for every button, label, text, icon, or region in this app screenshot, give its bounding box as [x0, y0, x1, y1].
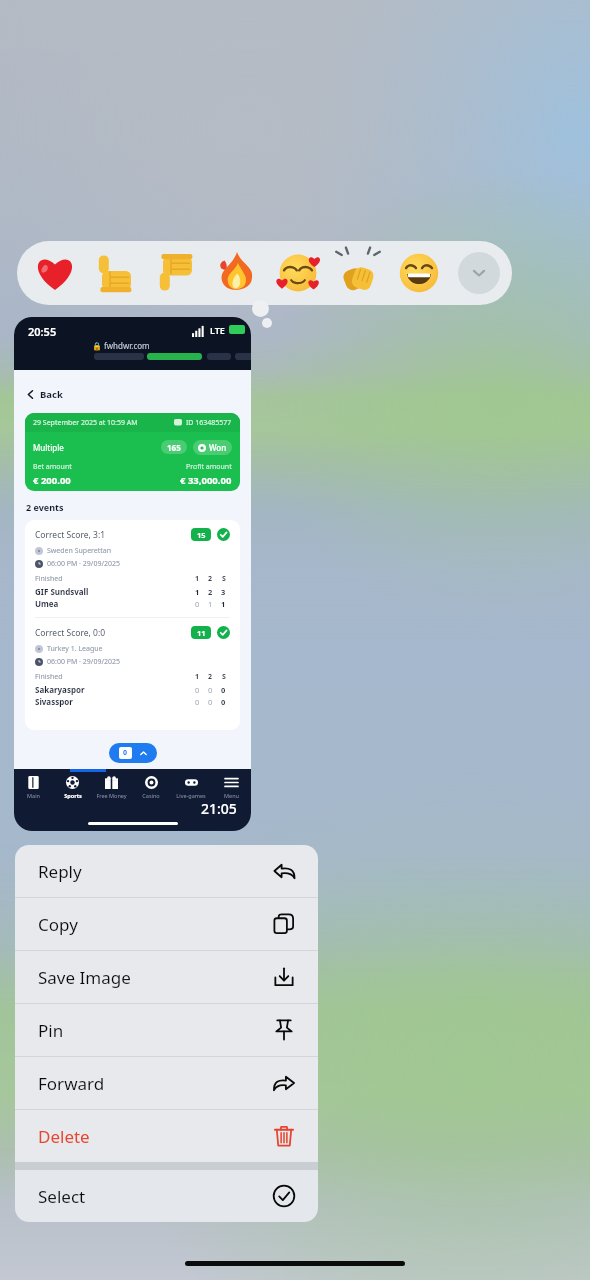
- staticText: 21:05: [201, 799, 237, 818]
- staticText: Live-games: [176, 792, 206, 799]
- staticText: 2 events: [26, 501, 64, 513]
- button[interactable]: Live-games: [171, 769, 211, 807]
- button[interactable]: Free Money: [92, 769, 131, 807]
- staticText: Finished: [35, 672, 63, 682]
- staticText: 🔒 fwhdwr.com: [92, 340, 150, 351]
- staticText: Won: [209, 442, 227, 453]
- button[interactable]: Save Image: [15, 951, 318, 1003]
- button[interactable]: Select: [15, 1170, 318, 1222]
- staticText: 165: [167, 442, 181, 453]
- staticText: 1: [208, 599, 213, 609]
- button[interactable]: Sports: [53, 769, 92, 807]
- staticText: 1: [195, 587, 200, 597]
- staticText: Correct Score, 0:0: [35, 627, 106, 639]
- button[interactable]: Delete: [15, 1110, 318, 1162]
- button[interactable]: Reaction 1: [33, 251, 77, 295]
- button[interactable]: Reaction 2: [94, 251, 138, 295]
- staticText: 0: [208, 685, 213, 695]
- staticText: € 33,000.00: [180, 474, 232, 487]
- button[interactable]: Reaction 6: [336, 251, 380, 295]
- staticText: Finished: [35, 574, 63, 584]
- staticText: S: [222, 574, 226, 584]
- button[interactable]: More reactions: [458, 252, 500, 294]
- button[interactable]: Casino: [131, 769, 171, 807]
- staticText: 29 September 2025 at 10:59 AM: [33, 418, 138, 428]
- staticText: 2: [208, 574, 213, 584]
- staticText: 0: [195, 599, 200, 609]
- staticText: 2: [208, 672, 213, 682]
- staticText: Multiple: [33, 442, 64, 453]
- staticText: 1: [221, 599, 226, 609]
- button[interactable]: Forward: [15, 1057, 318, 1109]
- button[interactable]: Pin: [15, 1004, 318, 1056]
- staticText: Casino: [142, 792, 160, 799]
- staticText: Copy: [38, 913, 78, 936]
- staticText: 0: [221, 697, 226, 707]
- staticText: 3: [221, 587, 226, 597]
- button[interactable]: Correct Score, 0:0: [35, 626, 230, 707]
- button[interactable]: 29 September 2025 at 10:59 AM: [25, 413, 240, 491]
- staticText: 0: [195, 697, 200, 707]
- staticText: 06:00 PM · 29/09/2025: [47, 559, 121, 569]
- staticText: 20:55: [28, 324, 57, 339]
- staticText: GIF Sundsvall: [35, 586, 89, 597]
- staticText: Delete: [38, 1125, 90, 1148]
- staticText: Pin: [38, 1019, 64, 1042]
- button[interactable]: Reaction 7: [397, 251, 441, 295]
- button[interactable]: Reaction 3: [155, 251, 199, 295]
- staticText: S: [222, 672, 226, 682]
- button[interactable]: Reaction 5: [276, 251, 320, 295]
- staticText: Sports: [64, 792, 82, 799]
- button[interactable]: 0: [109, 743, 157, 763]
- staticText: Back: [40, 388, 63, 401]
- button[interactable]: Reaction 4: [215, 251, 259, 295]
- staticText: Sivasspor: [35, 696, 73, 707]
- staticText: LTE: [210, 324, 225, 336]
- staticText: Umea: [35, 598, 59, 609]
- staticText: 0: [123, 748, 128, 758]
- staticText: Correct Score, 3:1: [35, 529, 106, 541]
- staticText: 2: [208, 587, 213, 597]
- staticText: 0: [221, 685, 226, 695]
- staticText: 11: [197, 628, 206, 638]
- staticText: Forward: [38, 1072, 105, 1095]
- staticText: Turkey 1. League: [47, 644, 103, 654]
- staticText: Save Image: [38, 966, 131, 989]
- staticText: Bet amount: [33, 462, 72, 472]
- staticText: Select: [38, 1185, 86, 1208]
- staticText: 1: [195, 672, 200, 682]
- staticText: Profit amount: [186, 462, 232, 472]
- button[interactable]: Main: [14, 769, 53, 807]
- staticText: 15: [197, 530, 206, 540]
- staticText: 1: [195, 574, 200, 584]
- staticText: 0: [208, 697, 213, 707]
- staticText: Sakaryaspor: [35, 684, 85, 695]
- staticText: 06:00 PM · 29/09/2025: [47, 657, 121, 667]
- button[interactable]: Menu: [211, 769, 251, 807]
- staticText: ID 163485577: [186, 418, 232, 428]
- button[interactable]: 20:55: [14, 317, 251, 831]
- staticText: Reply: [38, 860, 82, 883]
- button[interactable]: Reply: [15, 845, 318, 897]
- staticText: Free Money: [96, 792, 127, 799]
- staticText: 0: [195, 685, 200, 695]
- button[interactable]: Correct Score, 3:1: [35, 528, 230, 609]
- button[interactable]: Copy: [15, 898, 318, 950]
- button[interactable]: Back: [26, 383, 63, 405]
- staticText: Sweden Superettan: [47, 546, 112, 556]
- staticText: € 200.00: [33, 474, 71, 487]
- staticText: Menu: [224, 792, 239, 799]
- staticText: Main: [27, 792, 40, 799]
